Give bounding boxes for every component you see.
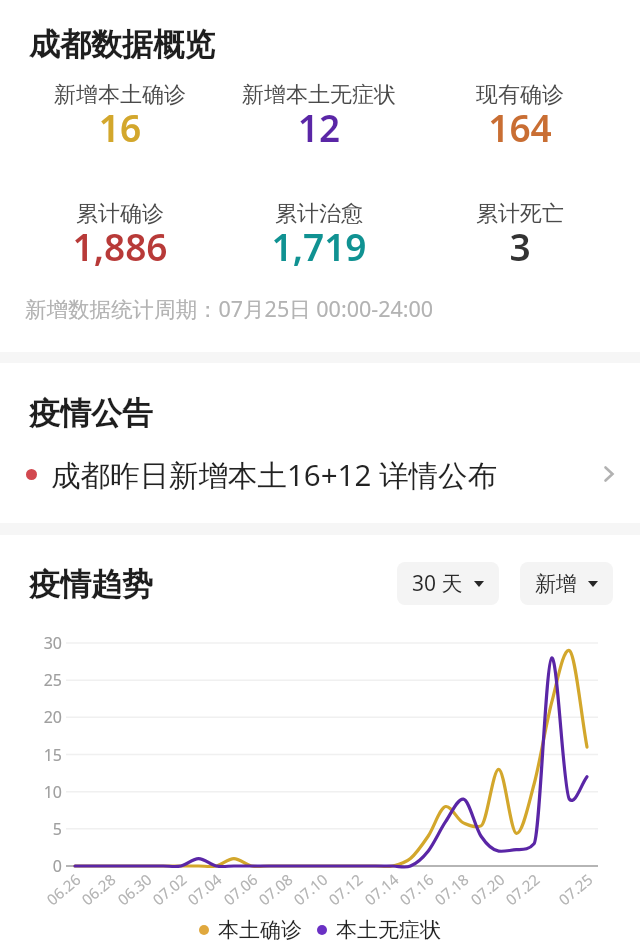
staticText: 20 bbox=[20, 706, 62, 728]
staticText: 新增 bbox=[535, 571, 577, 597]
button[interactable]: 30 天 bbox=[397, 562, 499, 605]
staticText: 07.25 bbox=[554, 869, 597, 909]
staticText: 30 天 bbox=[412, 569, 463, 598]
staticText: 06.26 bbox=[42, 869, 85, 909]
other: 查看详情 bbox=[604, 466, 614, 482]
staticText: 5 bbox=[20, 818, 62, 840]
staticText: 累计死亡 bbox=[410, 200, 630, 228]
staticText: 07.18 bbox=[430, 869, 473, 909]
staticText: 07.14 bbox=[360, 869, 403, 909]
button[interactable]: 本土无症状 bbox=[317, 917, 441, 943]
staticText: 07.10 bbox=[289, 869, 332, 909]
staticText: 16 bbox=[10, 102, 230, 152]
button[interactable]: 成都昨日新增本土16+12 详情公布 bbox=[0, 445, 640, 503]
staticText: 1,719 bbox=[209, 221, 429, 271]
staticText: 164 bbox=[410, 102, 630, 152]
button[interactable]: 本土确诊 bbox=[199, 917, 302, 943]
staticText: 06.30 bbox=[113, 869, 156, 909]
staticText: 12 bbox=[209, 102, 429, 152]
staticText: 疫情公告 bbox=[29, 394, 153, 433]
staticText: 本土确诊 bbox=[218, 917, 302, 943]
staticText: 本土无症状 bbox=[336, 917, 441, 943]
staticText: 成都数据概览 bbox=[29, 25, 215, 64]
staticText: 07.06 bbox=[219, 869, 262, 909]
staticText: 新增本土无症状 bbox=[209, 81, 429, 109]
staticText: 新增数据统计周期：07月25日 00:00-24:00 bbox=[25, 294, 434, 323]
staticText: 10 bbox=[20, 781, 62, 803]
button[interactable]: 新增 bbox=[520, 562, 613, 605]
staticText: 07.04 bbox=[183, 869, 226, 909]
staticText: 15 bbox=[20, 744, 62, 766]
staticText: 07.12 bbox=[324, 869, 367, 909]
staticText: 1,886 bbox=[10, 221, 230, 271]
staticText: 0 bbox=[20, 855, 62, 877]
staticText: 3 bbox=[410, 221, 630, 271]
staticText: 06.28 bbox=[77, 869, 120, 909]
staticText: 07.08 bbox=[254, 869, 297, 909]
staticText: 现有确诊 bbox=[410, 81, 630, 109]
staticText: 07.16 bbox=[395, 869, 438, 909]
staticText: 疫情趋势 bbox=[29, 565, 153, 604]
staticText: 25 bbox=[20, 669, 62, 691]
staticText: 07.20 bbox=[466, 869, 509, 909]
staticText: 成都昨日新增本土16+12 详情公布 bbox=[51, 454, 498, 494]
staticText: 累计确诊 bbox=[10, 200, 230, 228]
staticText: 07.22 bbox=[501, 869, 544, 909]
staticText: 新增本土确诊 bbox=[10, 81, 230, 109]
staticText: 07.02 bbox=[148, 869, 191, 909]
staticText: 30 bbox=[20, 632, 62, 654]
staticText: 累计治愈 bbox=[209, 200, 429, 228]
